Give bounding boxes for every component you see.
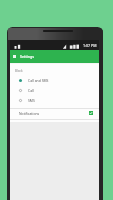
- button[interactable]: Call: [10, 85, 99, 95]
- staticText: Notifications: [19, 111, 40, 116]
- button[interactable]: Open navigation menu: [12, 54, 17, 59]
- staticText: 1:07 PM: [83, 43, 97, 48]
- staticText: Call: [28, 88, 34, 93]
- staticText: Block: [15, 69, 23, 73]
- button[interactable]: Notifications: [10, 108, 99, 118]
- button[interactable]: Call and SMS: [10, 75, 99, 85]
- staticText: Call and SMS: [28, 78, 49, 83]
- staticText: SMS: [28, 98, 35, 103]
- button[interactable]: SMS: [10, 95, 99, 105]
- staticText: Settings: [20, 54, 34, 59]
